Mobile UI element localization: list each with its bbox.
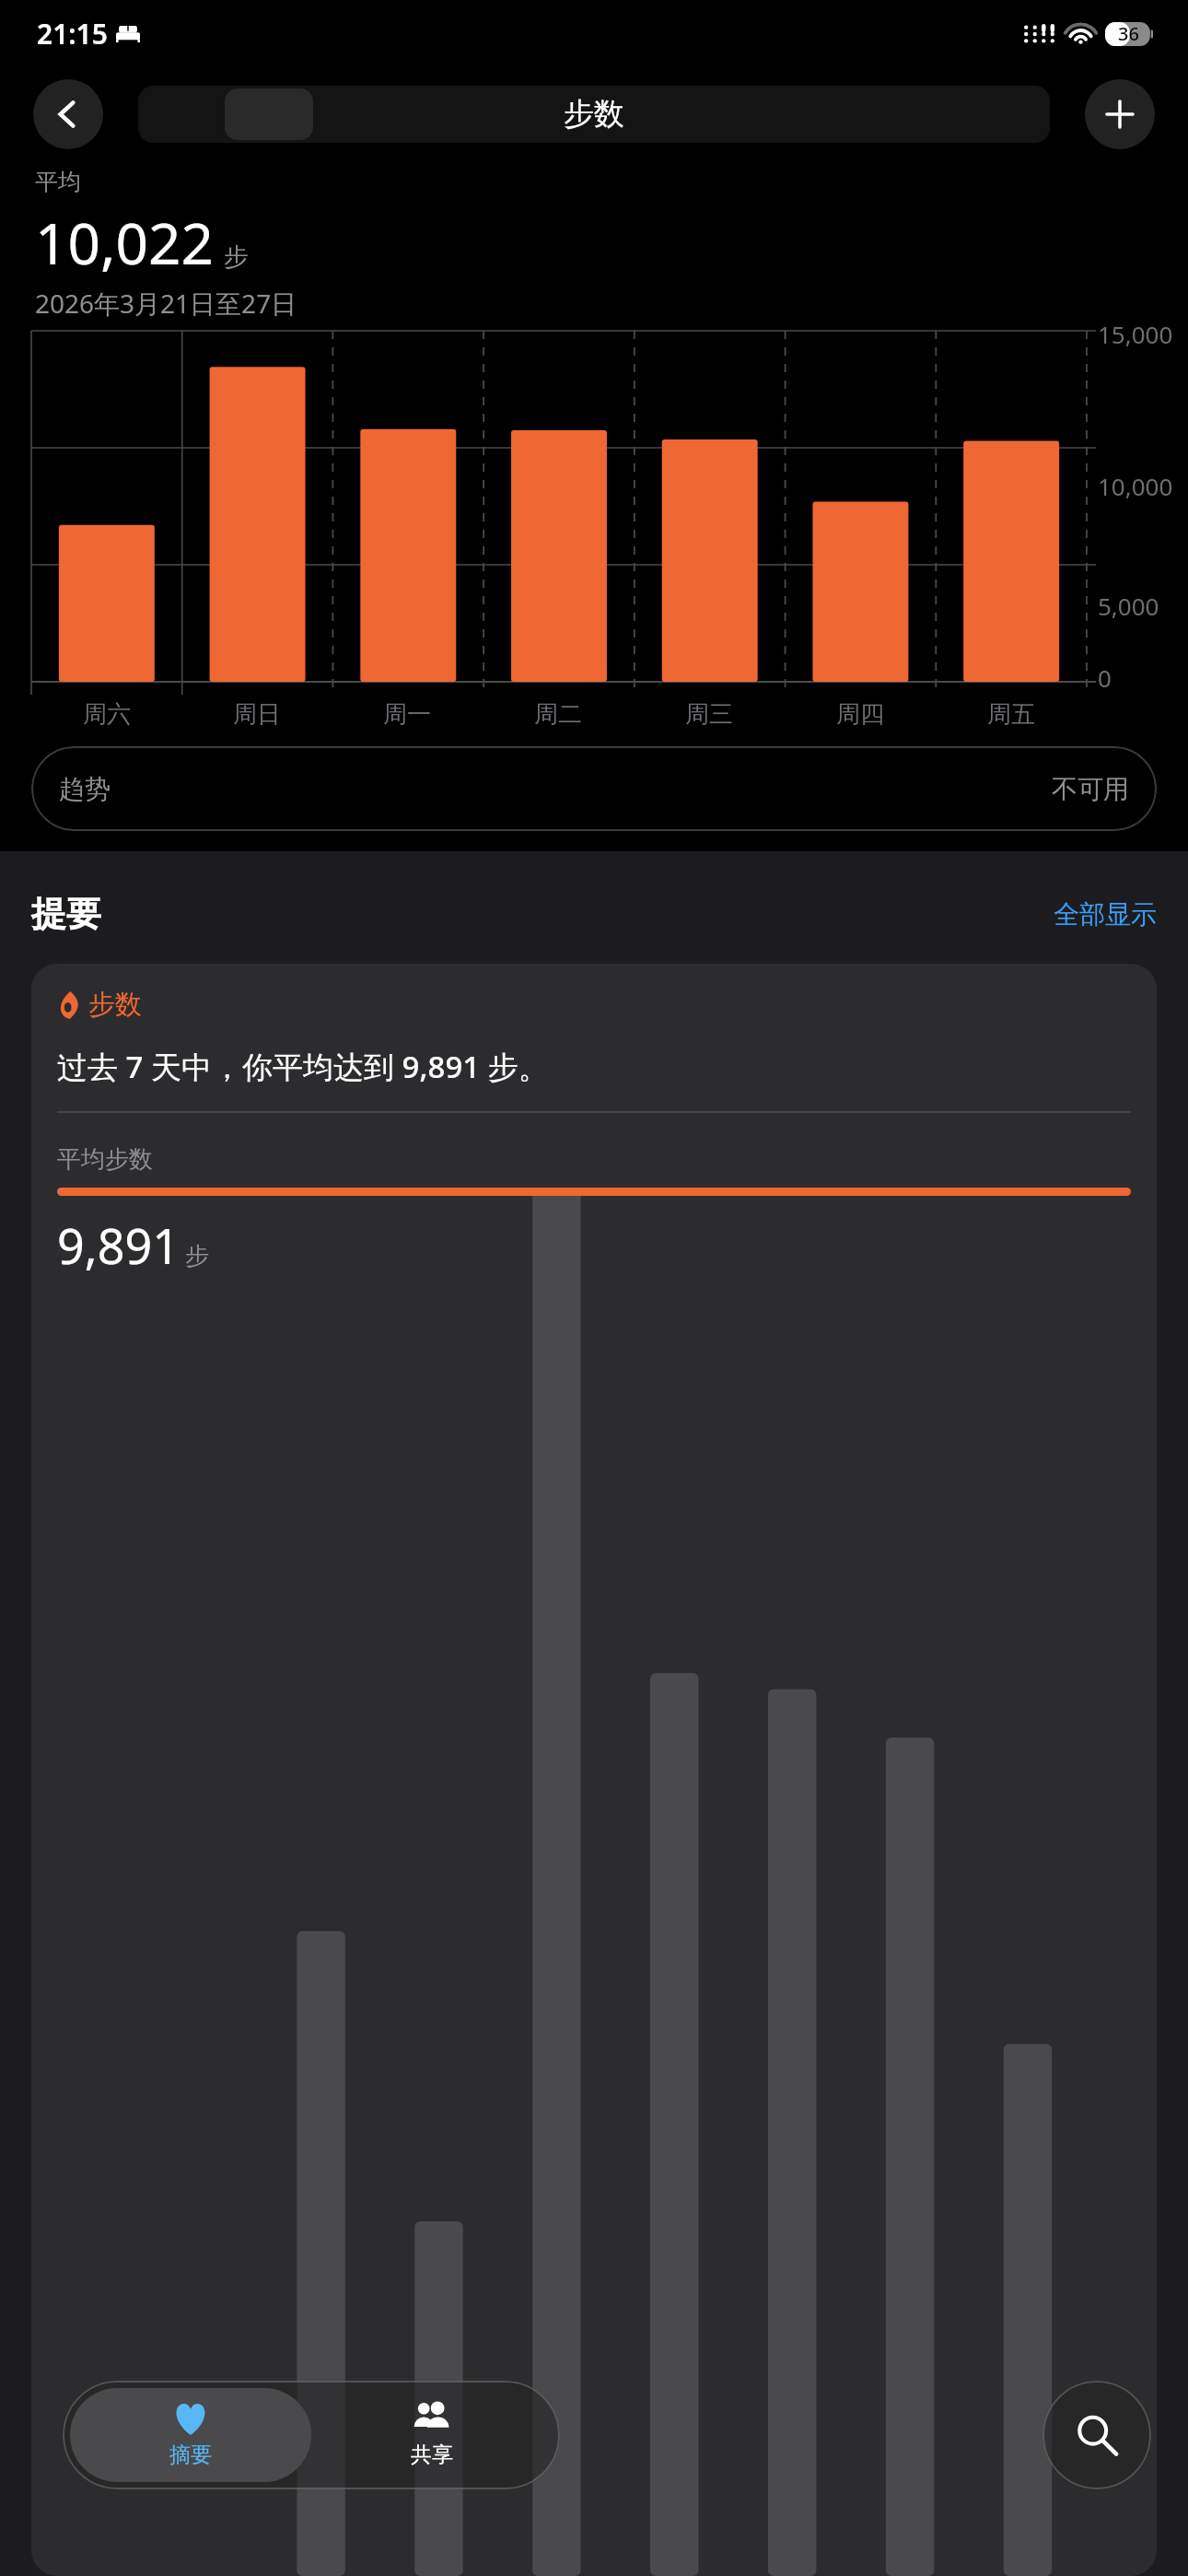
staticText: 5,000 <box>1098 590 1159 622</box>
staticText: 步 <box>224 241 249 273</box>
button[interactable]: 趋势 <box>31 746 1157 831</box>
staticText: 全部显示 <box>1054 898 1157 931</box>
staticText: 周一 <box>383 699 431 730</box>
staticText: 步 <box>185 1241 209 1271</box>
staticText: 过去 7 天中，你平均达到 9,891 步。 <box>57 1046 549 1087</box>
button[interactable]: 摘要 <box>70 2388 311 2482</box>
button[interactable]: 共享 <box>311 2388 553 2482</box>
staticText: 周五 <box>987 699 1035 730</box>
staticText: 平均 <box>35 168 81 196</box>
button[interactable]: Back <box>33 79 103 149</box>
staticText: 15,000 <box>1098 318 1173 350</box>
staticText: 共享 <box>411 2441 453 2468</box>
staticText: 10,022 <box>35 204 214 281</box>
staticText: 周三 <box>685 699 733 730</box>
staticText: 步数 <box>88 988 142 1022</box>
button[interactable]: Search <box>1042 2381 1151 2489</box>
button[interactable]: 步数 <box>31 964 1157 2576</box>
staticText: 周六 <box>83 699 131 730</box>
staticText: 周四 <box>836 699 884 730</box>
staticText: 0 <box>1098 662 1112 694</box>
staticText: 趋势 <box>59 773 111 805</box>
staticText: 周日 <box>233 699 281 730</box>
staticText: 周二 <box>534 699 582 730</box>
staticText: 21:15 <box>37 15 108 53</box>
staticText: 10,000 <box>1098 470 1173 502</box>
staticText: 36 <box>1118 21 1139 46</box>
staticText: 提要 <box>31 892 101 936</box>
staticText: 平均步数 <box>57 1144 153 1175</box>
button[interactable]: Add data <box>1085 79 1155 149</box>
staticText: 9,891 <box>57 1212 180 1278</box>
staticText: 摘要 <box>169 2441 212 2468</box>
button[interactable]: 全部显示 <box>1054 898 1157 931</box>
staticText: 2026年3月21日至27日 <box>35 286 297 321</box>
staticText: 步数 <box>564 95 624 134</box>
staticText: 不可用 <box>1052 773 1129 805</box>
